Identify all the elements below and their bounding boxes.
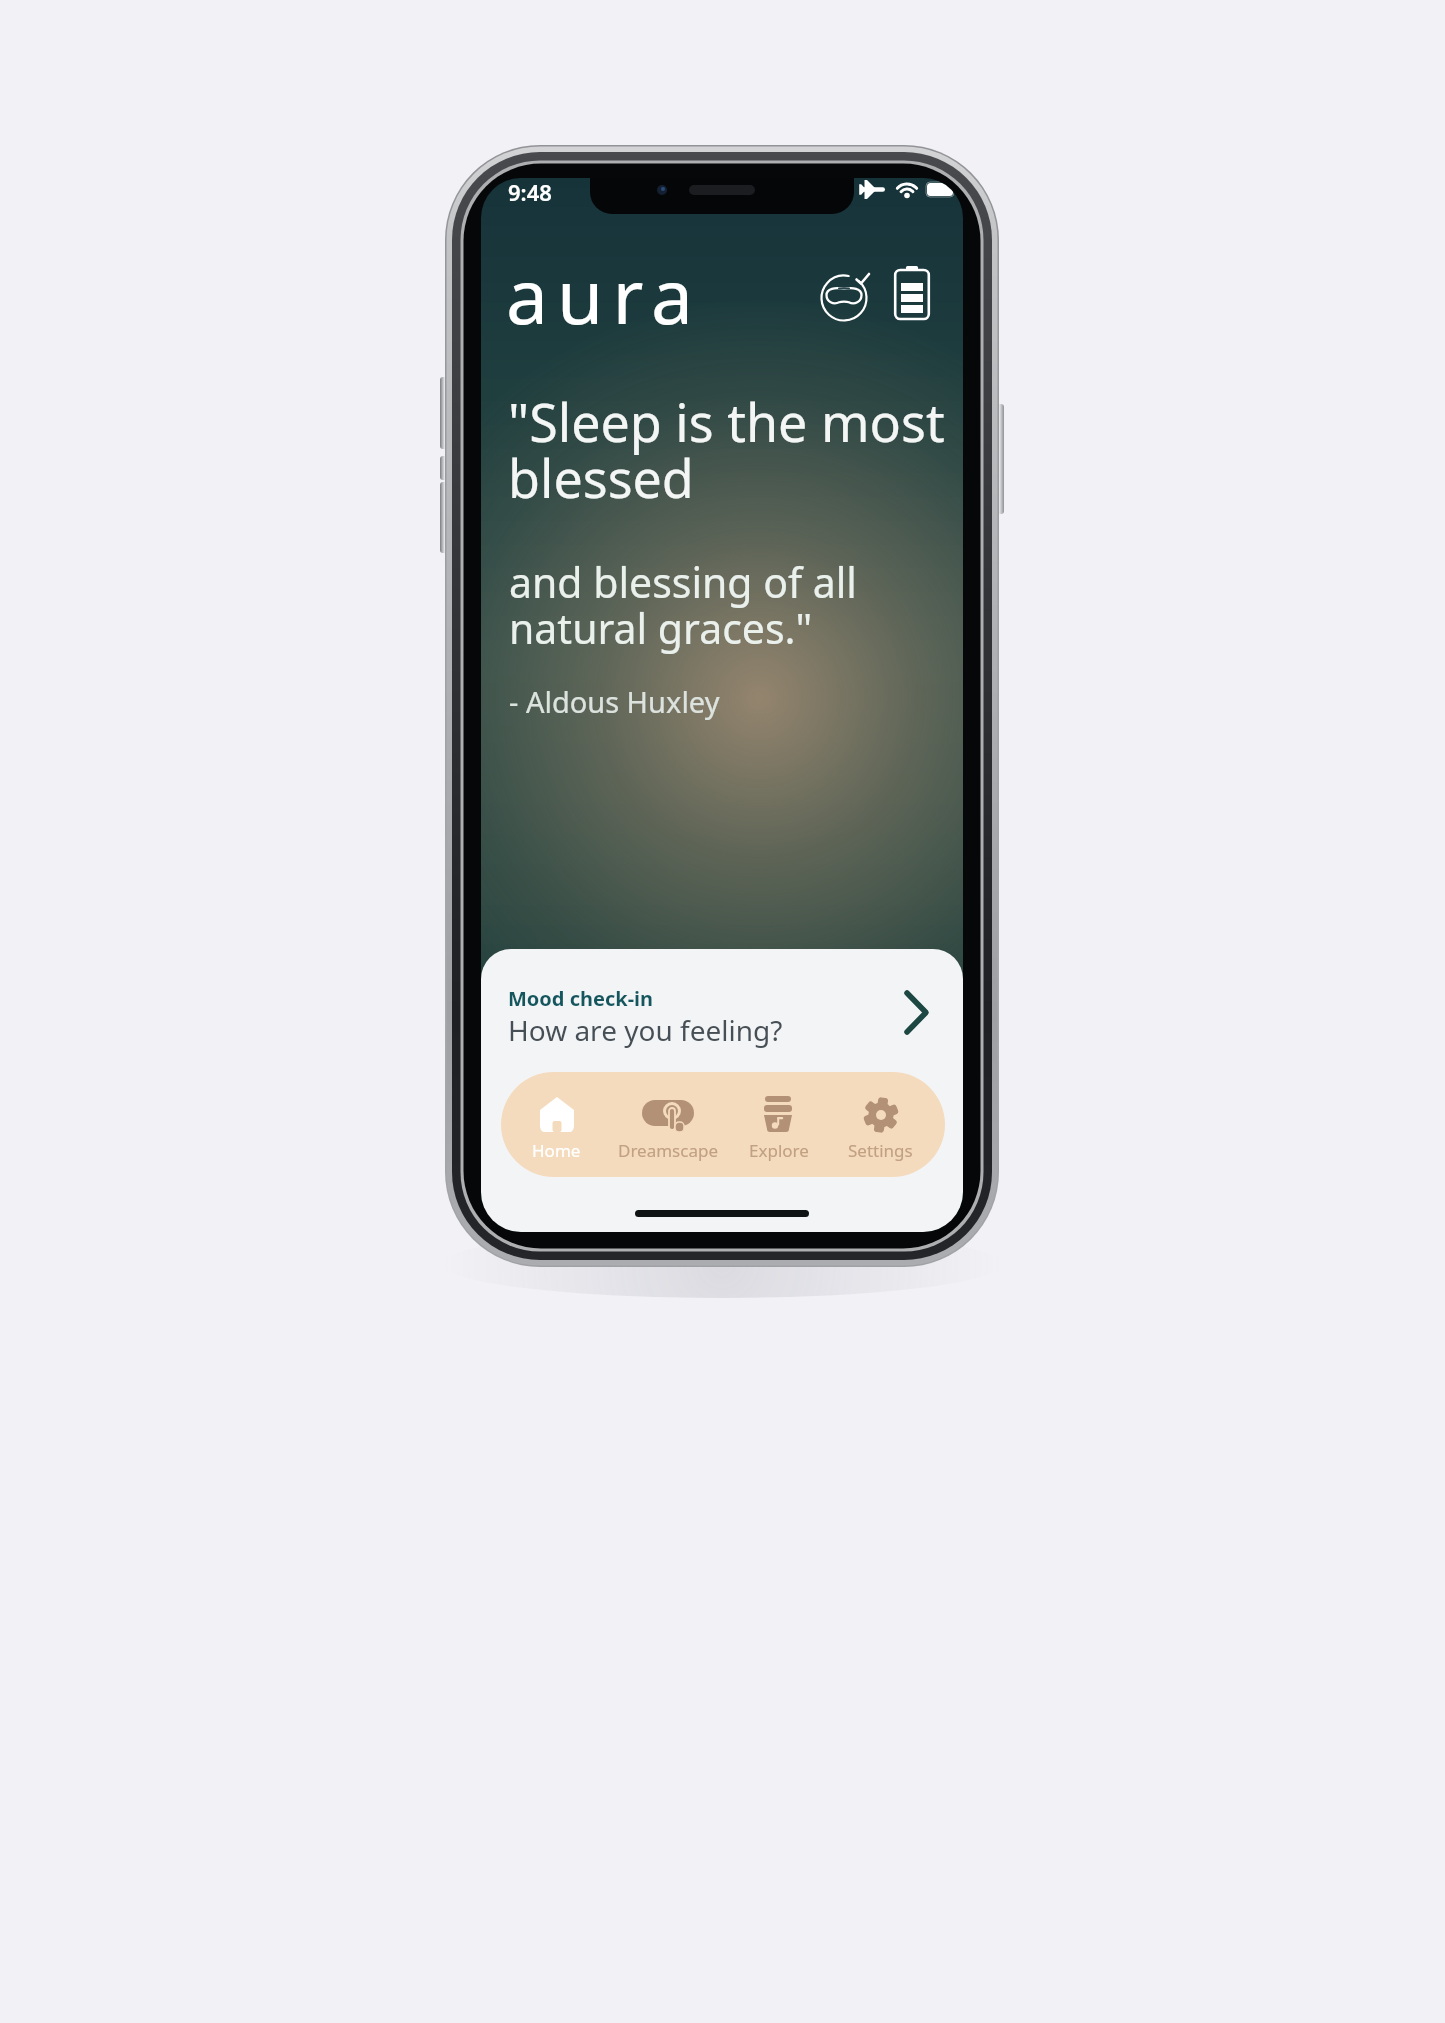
staticText: Explore (749, 1139, 809, 1162)
button[interactable] (819, 271, 871, 323)
staticText: aura (506, 244, 702, 346)
button[interactable]: Settings (825, 1072, 936, 1177)
button[interactable]: Home (501, 1072, 612, 1177)
button[interactable]: Dreamscape (612, 1072, 723, 1177)
staticText: Dreamscape (618, 1139, 718, 1162)
staticText: Settings (848, 1139, 913, 1162)
staticText: How are you feeling? (508, 1011, 783, 1049)
staticText: - Aldous Huxley (509, 682, 720, 721)
button[interactable]: Explore (723, 1072, 834, 1177)
staticText: 9:48 (508, 178, 552, 207)
staticText: Mood check-in (508, 985, 654, 1012)
button[interactable]: Mood check-in (481, 967, 963, 1067)
button[interactable] (894, 266, 930, 320)
staticText: Home (532, 1139, 581, 1162)
staticText: and blessing of all natural graces." (509, 554, 857, 656)
staticText: "Sleep is the most blessed (508, 386, 945, 513)
